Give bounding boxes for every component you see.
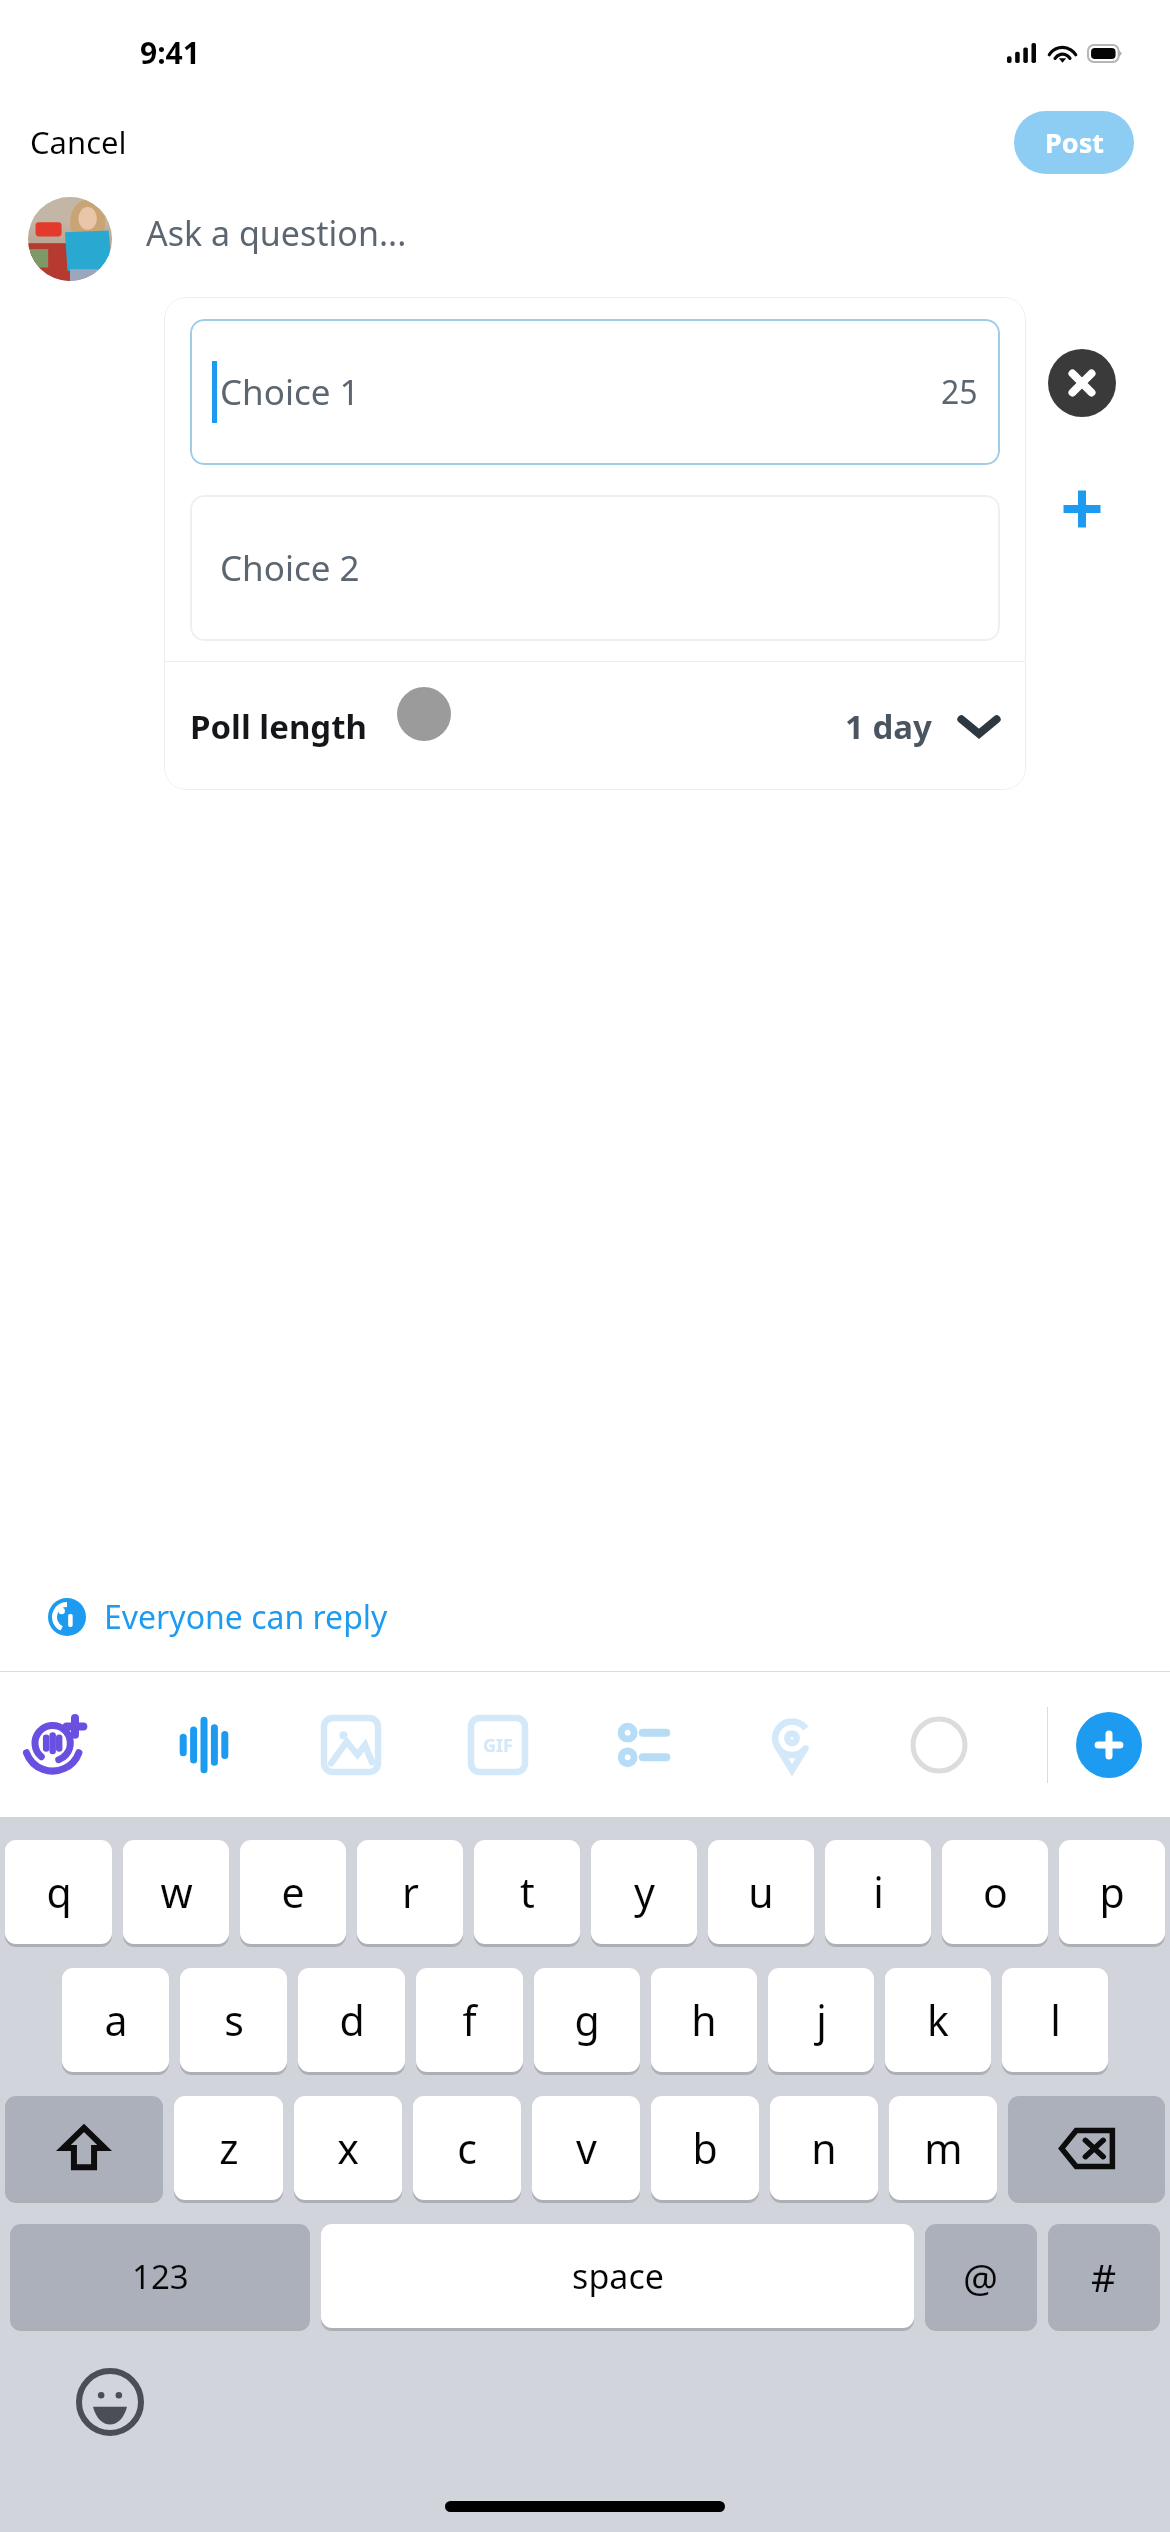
button[interactable]: p (1059, 1840, 1165, 1944)
staticText: 25 (941, 370, 978, 414)
staticText: # (1091, 2250, 1117, 2303)
button[interactable]: space (321, 2224, 914, 2328)
staticText: h (691, 1992, 717, 2048)
staticText: f (462, 1992, 477, 2048)
button[interactable]: More (900, 1706, 978, 1784)
button[interactable]: Choice 1 (190, 319, 1000, 465)
button[interactable]: u (708, 1840, 814, 1944)
button[interactable]: GIF (459, 1706, 537, 1784)
staticText: Everyone can reply (104, 1595, 388, 1639)
staticText: i (873, 1864, 884, 1920)
button[interactable]: Poll length (164, 662, 1026, 790)
staticText: y (634, 1864, 655, 1920)
staticText: l (1050, 1992, 1061, 2048)
button[interactable]: @ (925, 2224, 1037, 2328)
staticText: Choice 1 (220, 368, 360, 416)
staticText: x (337, 2120, 359, 2176)
staticText: t (520, 1864, 535, 1920)
button[interactable]: d (298, 1968, 405, 2072)
button[interactable]: z (174, 2096, 283, 2200)
staticText: v (576, 2120, 597, 2176)
button[interactable]: Choice 2 (190, 495, 1000, 641)
staticText: j (816, 1992, 827, 2048)
button[interactable]: 123 (10, 2224, 310, 2328)
staticText: 9:41 (140, 32, 200, 73)
button[interactable]: a (62, 1968, 169, 2072)
button[interactable]: x (294, 2096, 402, 2200)
button[interactable]: Remove choice (1048, 349, 1116, 417)
staticText: Cancel (30, 121, 127, 163)
staticText: z (219, 2120, 239, 2176)
button[interactable]: o (942, 1840, 1048, 1944)
staticText: p (1099, 1864, 1125, 1920)
button[interactable]: Add another post (1076, 1712, 1142, 1778)
staticText: space (572, 2253, 664, 2299)
button[interactable]: t (474, 1840, 580, 1944)
staticText: a (104, 1992, 128, 2048)
staticText: s (224, 1992, 244, 2048)
staticText: u (748, 1864, 774, 1920)
staticText: w (160, 1864, 193, 1920)
staticText: @ (963, 2250, 999, 2303)
button[interactable]: # (1048, 2224, 1160, 2328)
button[interactable]: c (413, 2096, 521, 2200)
staticText: c (457, 2120, 477, 2176)
staticText: 123 (132, 2254, 189, 2299)
staticText: o (983, 1864, 1008, 1920)
staticText: Poll length (190, 704, 367, 749)
staticText: Post (1045, 124, 1104, 161)
staticText: k (927, 1992, 949, 2048)
button[interactable]: y (591, 1840, 697, 1944)
staticText: n (811, 2120, 837, 2176)
button[interactable]: Cancel (0, 109, 157, 175)
staticText: b (692, 2120, 718, 2176)
button[interactable]: Everyone can reply (44, 1587, 392, 1647)
button[interactable]: s (180, 1968, 287, 2072)
staticText: 1 day (845, 704, 932, 749)
button[interactable]: Media (312, 1706, 390, 1784)
button[interactable]: Location (753, 1706, 831, 1784)
button[interactable]: Voice (165, 1706, 243, 1784)
button[interactable]: w (123, 1840, 229, 1944)
staticText: Ask a question... (146, 210, 407, 256)
button[interactable]: Post (1014, 111, 1134, 174)
button[interactable]: b (651, 2096, 759, 2200)
staticText: m (924, 2120, 963, 2176)
staticText: d (339, 1992, 365, 2048)
button[interactable]: v (532, 2096, 640, 2200)
button[interactable]: m (889, 2096, 997, 2200)
button[interactable]: e (240, 1840, 346, 1944)
button[interactable]: n (770, 2096, 878, 2200)
button[interactable]: Poll (606, 1706, 684, 1784)
button[interactable]: Add choice (1048, 475, 1116, 543)
button[interactable]: i (825, 1840, 931, 1944)
button[interactable]: f (416, 1968, 523, 2072)
button[interactable]: Add audio (18, 1706, 96, 1784)
staticText: q (46, 1864, 72, 1920)
button[interactable]: Profile photo (28, 197, 112, 281)
staticText: Choice 2 (220, 544, 360, 592)
button[interactable]: j (768, 1968, 874, 2072)
button[interactable]: h (651, 1968, 757, 2072)
button[interactable]: Emoji (76, 2368, 144, 2436)
staticText: g (574, 1992, 600, 2048)
button[interactable]: k (885, 1968, 991, 2072)
button[interactable]: r (357, 1840, 463, 1944)
button[interactable]: Shift (5, 2096, 163, 2200)
staticText: r (402, 1864, 419, 1920)
button[interactable]: g (534, 1968, 640, 2072)
button[interactable]: l (1002, 1968, 1108, 2072)
button[interactable]: q (5, 1840, 112, 1944)
staticText: GIF (483, 1733, 513, 1758)
staticText: e (281, 1864, 305, 1920)
button[interactable]: Backspace (1008, 2096, 1165, 2200)
